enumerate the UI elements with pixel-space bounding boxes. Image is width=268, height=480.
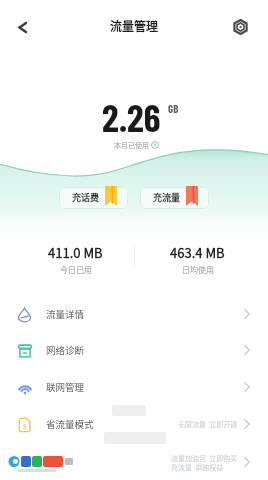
button[interactable]: 充话费 [59, 187, 128, 209]
button[interactable]: 网络诊断 [0, 332, 268, 368]
button[interactable]: 充流量 [140, 187, 209, 209]
staticText: 无限流量 立即开通 [178, 419, 238, 429]
staticText: 今日已用 [60, 264, 92, 276]
staticText: GB [168, 102, 179, 115]
staticText: 411.0 MB [48, 243, 103, 262]
button[interactable]: Back [6, 11, 38, 43]
staticText: 流量管理 [110, 17, 159, 34]
staticText: 充流量 [153, 191, 181, 204]
staticText: 联网管理 [46, 380, 85, 394]
button[interactable]: 联网管理 [0, 369, 268, 405]
staticText: 流量加油包 立即购买 免流量 单独权益 [171, 453, 238, 472]
staticText: 本月已使用 [114, 140, 149, 150]
staticText: 充话费 [72, 191, 100, 204]
button[interactable]: Settings [225, 12, 255, 42]
button[interactable]: 省流量模式 [0, 406, 268, 442]
button[interactable]: 411.0 MB [13, 236, 256, 282]
button[interactable]: 流量加油包 立即购买 免流量 单独权益 [0, 444, 268, 480]
staticText: 省流量模式 [46, 417, 94, 431]
staticText: 日均使用 [182, 264, 214, 276]
staticText: 流量详情 [46, 307, 85, 321]
staticText: 2.26 [102, 94, 161, 140]
staticText: 网络诊断 [46, 343, 85, 357]
button[interactable]: 流量详情 [0, 296, 268, 332]
staticText: 463.4 MB [170, 243, 225, 262]
